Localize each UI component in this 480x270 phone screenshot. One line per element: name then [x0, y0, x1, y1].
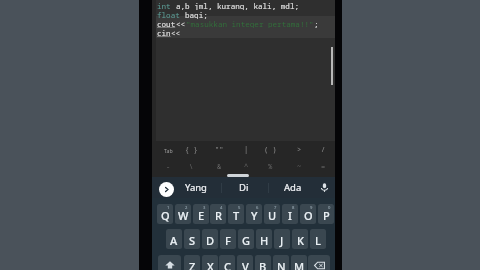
staticText: float [157, 10, 185, 19]
button[interactable]: G [238, 229, 254, 249]
button[interactable]: \ [180, 158, 202, 176]
button[interactable]: D [202, 229, 218, 249]
button[interactable]: Di [227, 177, 261, 198]
staticText: / [321, 145, 326, 155]
button[interactable]: Backspace [308, 255, 330, 270]
button[interactable]: N [273, 255, 289, 270]
button[interactable]: K [292, 229, 308, 249]
staticText: Ada [284, 181, 302, 194]
staticText: V [242, 259, 249, 270]
staticText: 1 [167, 205, 170, 211]
button[interactable]: B [255, 255, 271, 270]
button[interactable]: 7 [264, 204, 280, 224]
staticText: ^ [244, 162, 249, 172]
staticText: 0 [328, 205, 331, 211]
staticText: \ [189, 162, 194, 172]
staticText: 6 [256, 205, 259, 211]
staticText: W [178, 208, 189, 223]
staticText: << [176, 19, 186, 28]
button[interactable]: Z [184, 255, 200, 270]
button[interactable]: "" [208, 141, 230, 159]
button[interactable]: X [202, 255, 218, 270]
button[interactable]: > [288, 141, 310, 159]
button[interactable]: F [220, 229, 236, 249]
button[interactable]: & [208, 158, 230, 176]
staticText: 3 [203, 205, 206, 211]
staticText: H [260, 233, 269, 248]
button[interactable]: Shift [158, 255, 181, 270]
staticText: | [244, 145, 249, 155]
button[interactable]: Ada [276, 177, 310, 198]
staticText: 9 [310, 205, 313, 211]
button[interactable]: M [291, 255, 307, 270]
staticText: Y [251, 208, 258, 223]
button[interactable]: 3 [193, 204, 209, 224]
button[interactable]: S [184, 229, 200, 249]
staticText: "masukkan integer pertama!!" [186, 19, 314, 28]
staticText: { } [185, 145, 198, 155]
button[interactable]: 0 [318, 204, 334, 224]
staticText: I [288, 208, 292, 223]
button[interactable]: C [219, 255, 235, 270]
staticText: X [207, 259, 214, 270]
button[interactable]: ^ [235, 158, 257, 176]
staticText: Q [161, 208, 170, 223]
button[interactable]: A [166, 229, 182, 249]
staticText: P [323, 208, 330, 223]
button[interactable]: { } [180, 141, 202, 159]
button[interactable]: / [312, 141, 334, 159]
button[interactable]: 8 [282, 204, 298, 224]
staticText: "" [215, 145, 224, 155]
staticText: 5 [238, 205, 241, 211]
staticText: C [224, 259, 231, 270]
button[interactable]: = [312, 158, 334, 176]
button[interactable]: 1 [157, 204, 173, 224]
button[interactable]: L [310, 229, 326, 249]
staticText: D [206, 233, 215, 248]
staticText: bagi; [185, 10, 208, 19]
staticText: 2 [185, 205, 188, 211]
staticText: ~ [297, 162, 302, 172]
button[interactable]: H [256, 229, 272, 249]
staticText: a,b jml, kurang, kali, mdl; [176, 1, 300, 10]
staticText: ; [314, 19, 319, 28]
staticText: R [215, 208, 222, 223]
staticText: B [259, 259, 267, 270]
staticText: S [189, 233, 196, 248]
button[interactable]: | [235, 141, 257, 159]
staticText: 7 [274, 205, 277, 211]
staticText: J [280, 233, 284, 248]
button[interactable]: 6 [246, 204, 262, 224]
staticText: U [268, 208, 277, 223]
staticText: N [277, 259, 286, 270]
staticText: A [170, 233, 178, 248]
staticText: K [297, 233, 304, 248]
staticText: Tab [164, 147, 173, 154]
staticText: G [242, 233, 250, 248]
staticText: cin [157, 28, 171, 37]
staticText: % [268, 162, 273, 172]
staticText: 4 [220, 205, 223, 211]
button[interactable]: Yang [179, 177, 213, 198]
staticText: M [294, 259, 305, 270]
staticText: Z [189, 259, 196, 270]
button[interactable]: 2 [175, 204, 191, 224]
button[interactable]: Voice input [314, 177, 334, 198]
staticText: 8 [292, 205, 295, 211]
button[interactable]: Expand suggestions [159, 182, 174, 197]
staticText: int [157, 1, 176, 10]
staticText: = [321, 162, 326, 172]
button[interactable]: V [237, 255, 253, 270]
button[interactable]: Tab [157, 141, 179, 159]
button[interactable]: J [274, 229, 290, 249]
button[interactable]: 5 [228, 204, 244, 224]
button[interactable]: ( ) [259, 141, 281, 159]
staticText: E [198, 208, 205, 223]
staticText: & [217, 162, 222, 172]
button[interactable]: 9 [300, 204, 316, 224]
button[interactable]: % [259, 158, 281, 176]
button[interactable]: 4 [210, 204, 226, 224]
staticText: Yang [185, 181, 207, 194]
